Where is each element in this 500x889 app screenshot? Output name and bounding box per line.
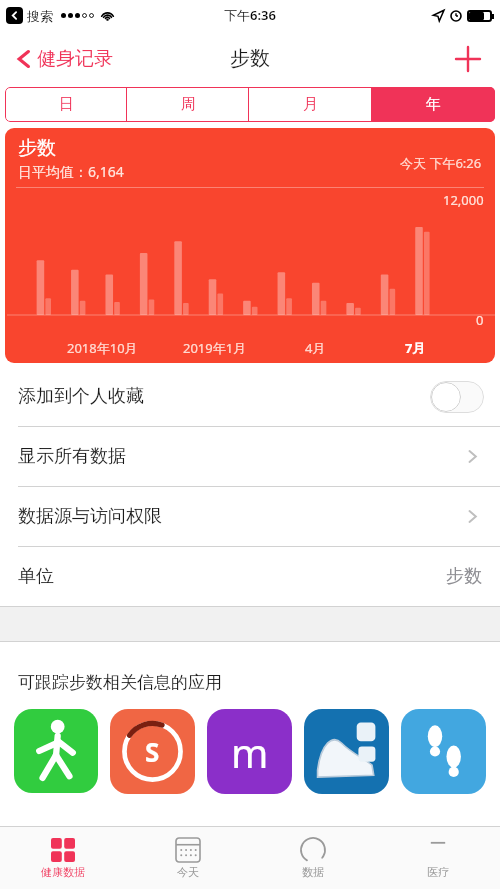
button[interactable]: 健身记录 bbox=[10, 41, 117, 77]
button[interactable]: Add to favorites toggle bbox=[430, 381, 484, 413]
staticText: 数据 bbox=[302, 865, 324, 879]
button[interactable]: App bbox=[401, 709, 486, 794]
staticText: m bbox=[231, 725, 269, 779]
staticText: 12,000 bbox=[443, 191, 484, 209]
staticText: 7月 bbox=[405, 339, 426, 357]
staticText: 下午6:36 bbox=[224, 6, 276, 24]
staticText: 单位 bbox=[18, 565, 54, 588]
staticText: 年 bbox=[426, 95, 441, 114]
staticText: 医疗 bbox=[427, 865, 449, 879]
staticText: 周 bbox=[181, 95, 196, 114]
staticText: 可跟踪步数相关信息的应用 bbox=[18, 672, 222, 693]
button[interactable]: App bbox=[207, 709, 292, 794]
button[interactable]: 年 bbox=[372, 87, 495, 122]
button[interactable]: 显示所有数据 bbox=[0, 427, 500, 486]
staticText: 显示所有数据 bbox=[18, 445, 126, 468]
staticText: 0 bbox=[476, 311, 484, 329]
staticText: 日 bbox=[59, 95, 74, 114]
staticText: 步数 bbox=[446, 565, 482, 588]
button[interactable]: 今天 bbox=[125, 827, 250, 889]
staticText: 4月 bbox=[305, 339, 326, 357]
button[interactable]: App bbox=[304, 709, 389, 794]
staticText: 今天 bbox=[177, 865, 199, 879]
staticText: 今天 下午6:26 bbox=[400, 154, 482, 172]
staticText: 步数 bbox=[230, 46, 270, 71]
button[interactable]: 周 bbox=[127, 87, 249, 122]
button[interactable]: 添加到个人收藏 bbox=[0, 367, 500, 426]
staticText: 步数 bbox=[18, 136, 56, 160]
staticText: 搜索 bbox=[27, 8, 53, 24]
staticText: S bbox=[145, 734, 160, 769]
staticText: 添加到个人收藏 bbox=[18, 385, 144, 408]
button[interactable]: 健康数据 bbox=[0, 827, 125, 889]
button[interactable]: 月 bbox=[249, 87, 372, 122]
button[interactable]: 数据 bbox=[250, 827, 375, 889]
button[interactable]: 医疗 bbox=[375, 827, 500, 889]
staticText: 2019年1月 bbox=[183, 339, 247, 357]
button[interactable]: 日 bbox=[5, 87, 127, 122]
button[interactable]: 单位 bbox=[0, 547, 500, 606]
button[interactable]: App bbox=[14, 709, 98, 793]
button[interactable]: 步数 bbox=[5, 128, 495, 363]
staticText: 健康数据 bbox=[41, 865, 85, 879]
button[interactable]: Add data bbox=[450, 41, 486, 77]
staticText: 2018年10月 bbox=[67, 339, 138, 357]
button[interactable]: 数据源与访问权限 bbox=[0, 487, 500, 546]
staticText: 数据源与访问权限 bbox=[18, 505, 162, 528]
staticText: 健身记录 bbox=[37, 47, 113, 71]
button[interactable]: App bbox=[110, 709, 195, 794]
staticText: 日平均值：6,164 bbox=[18, 162, 124, 181]
staticText: 月 bbox=[303, 95, 318, 114]
